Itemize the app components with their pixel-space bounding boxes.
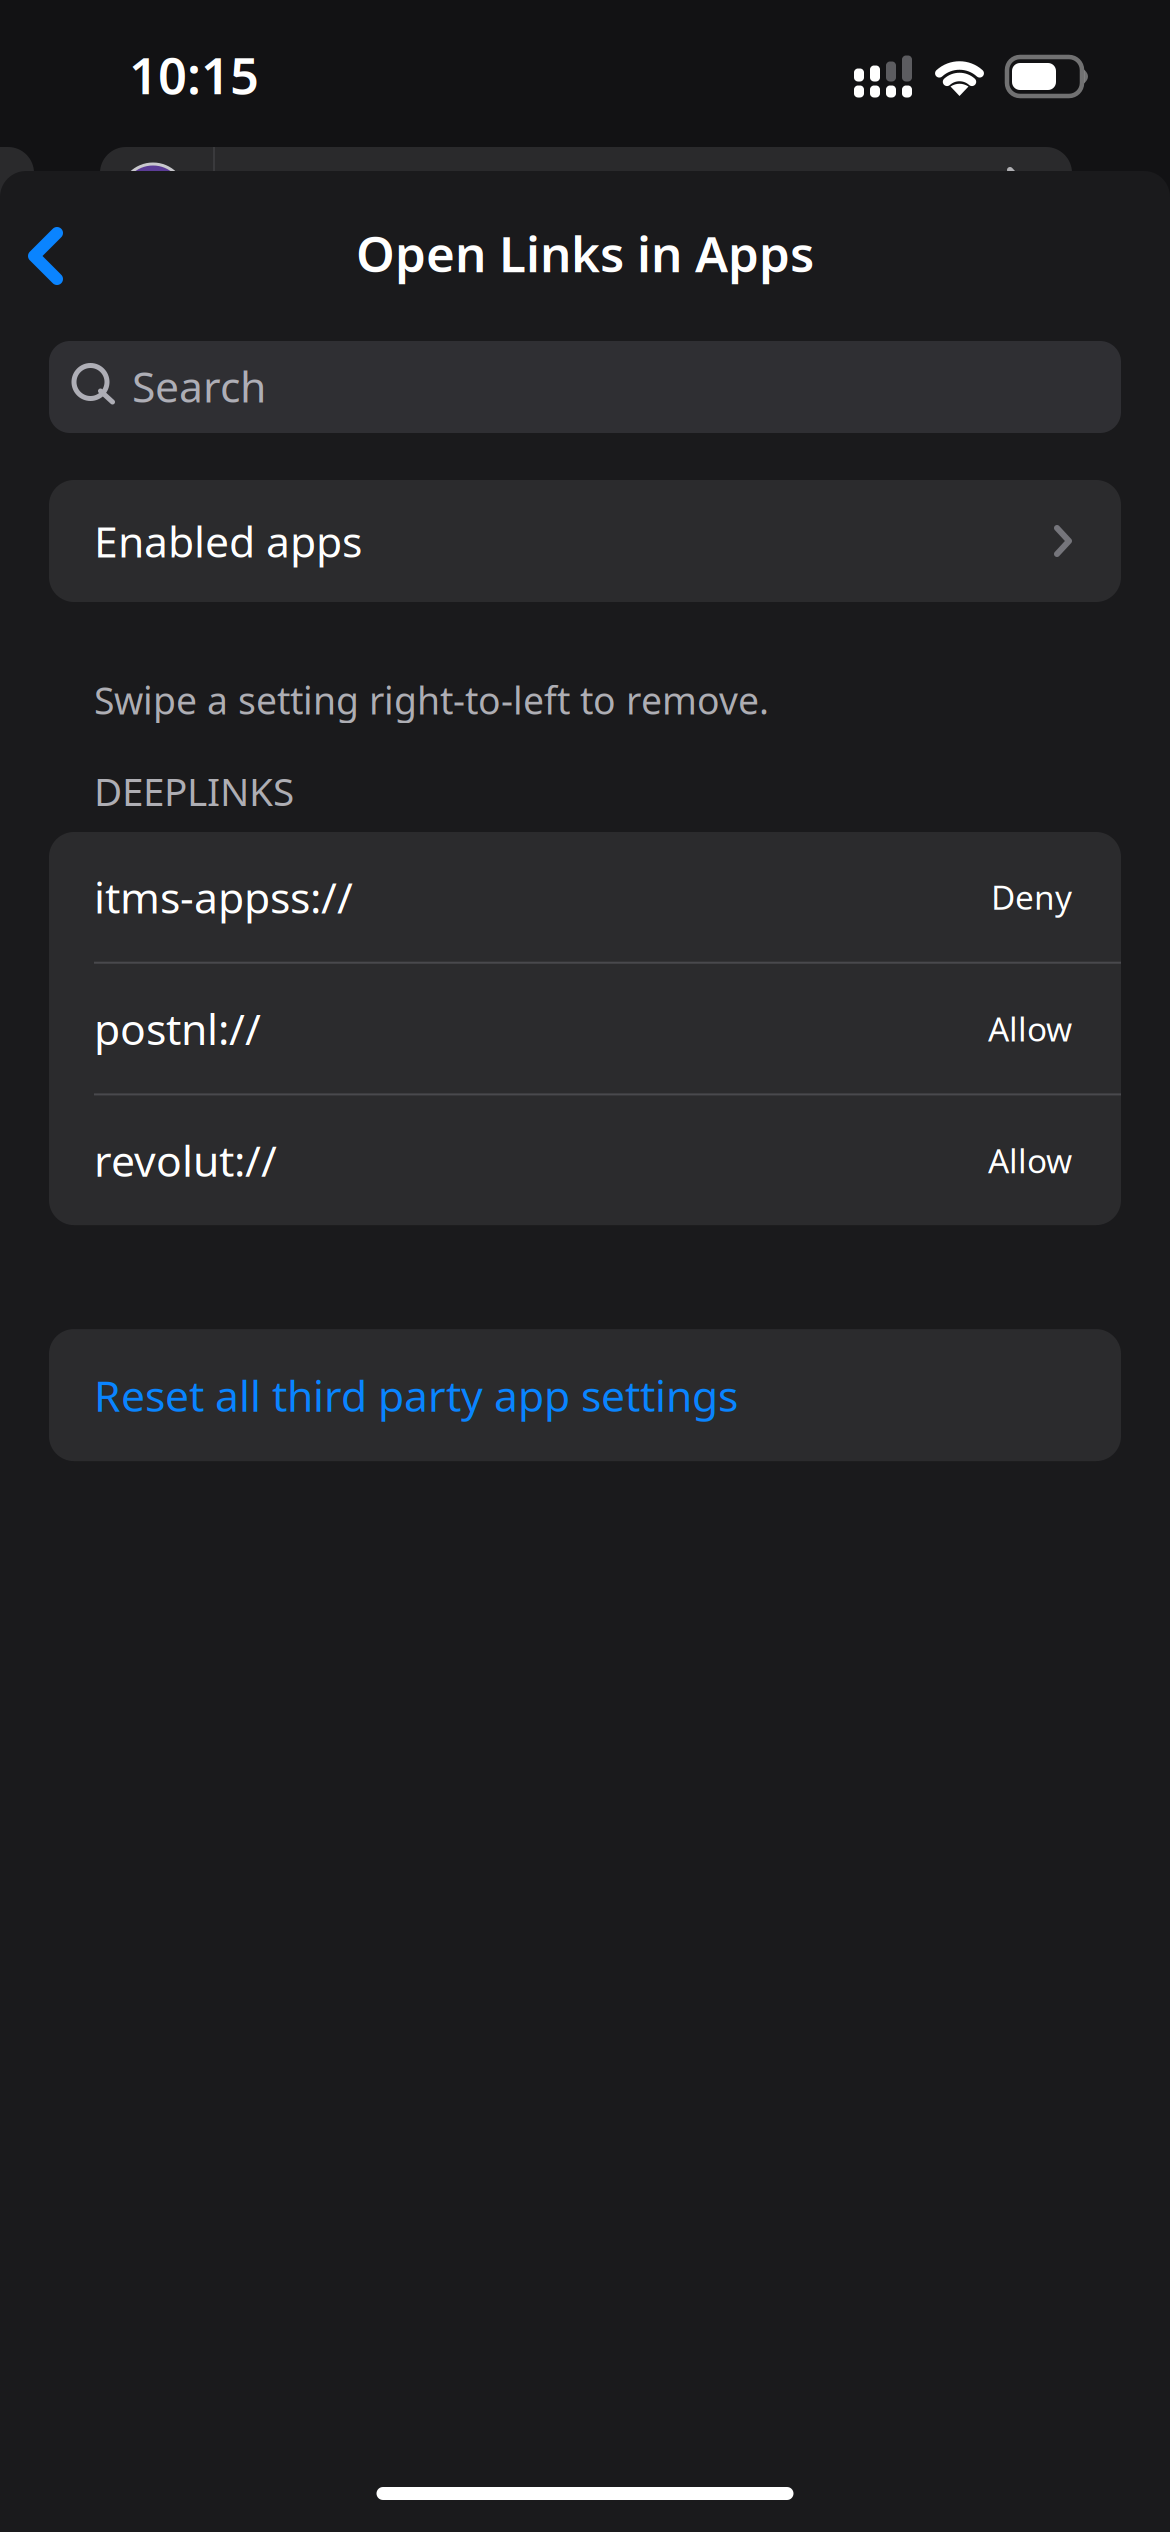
staticText: Allow: [988, 1006, 1072, 1051]
button[interactable]: Reset all third party app settings: [49, 1329, 1121, 1461]
staticText: 10:15: [129, 41, 259, 108]
button[interactable]: Search: [49, 341, 1121, 433]
button[interactable]: postnl://: [49, 964, 1121, 1093]
staticText: Search: [132, 358, 266, 414]
staticText: postnl://: [94, 1000, 261, 1057]
staticText: DEEPLINKS: [94, 765, 294, 817]
button[interactable]: Enabled apps: [49, 480, 1121, 602]
button[interactable]: revolut://: [49, 1095, 1121, 1225]
staticText: Open Links in Apps: [356, 220, 814, 286]
staticText: itms-appss://: [94, 868, 353, 925]
staticText: Swipe a setting right-to-left to remove.: [94, 675, 769, 725]
staticText: Allow: [988, 1138, 1072, 1182]
button[interactable]: itms-appss://: [49, 832, 1121, 962]
staticText: Enabled apps: [94, 513, 362, 569]
button[interactable]: Back: [0, 203, 98, 309]
staticText: Deny: [991, 875, 1072, 919]
staticText: Reset all third party app settings: [94, 1367, 738, 1423]
staticText: revolut://: [94, 1132, 277, 1189]
